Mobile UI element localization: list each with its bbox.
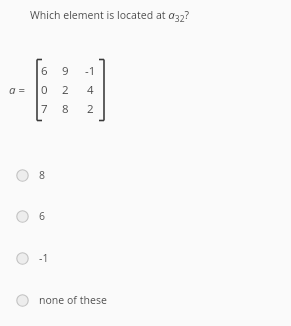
staticText: Which element is located at a32? — [30, 7, 190, 25]
button[interactable]: 8 — [0, 162, 291, 188]
staticText: 6 — [39, 209, 46, 223]
staticText: 4 — [87, 82, 94, 98]
staticText: none of these — [39, 293, 107, 307]
button[interactable]: none of these — [0, 287, 291, 313]
staticText: -1 — [85, 63, 96, 79]
staticText: 2 — [62, 82, 69, 98]
button[interactable]: 6 — [0, 203, 291, 229]
staticText: 9 — [62, 63, 69, 79]
staticText: 6 — [41, 63, 48, 79]
staticText: a = — [9, 82, 26, 98]
staticText: 2 — [87, 101, 94, 117]
staticText: 0 — [41, 82, 48, 98]
staticText: 8 — [39, 168, 46, 182]
staticText: 8 — [62, 101, 69, 117]
staticText: 7 — [41, 101, 48, 117]
staticText: -1 — [39, 251, 49, 265]
button[interactable]: -1 — [0, 245, 291, 271]
